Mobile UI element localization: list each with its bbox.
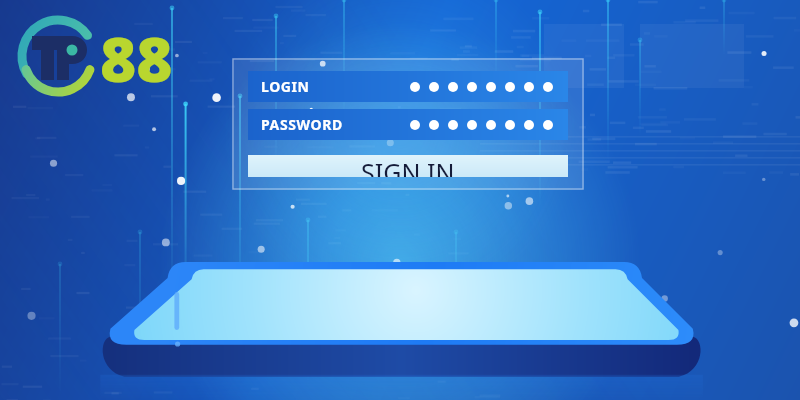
button[interactable]: PASSWORD	[248, 109, 568, 140]
staticText: 88	[100, 16, 173, 100]
staticText: PASSWORD	[261, 115, 343, 134]
button[interactable]: LOGIN	[248, 71, 568, 102]
button[interactable]: SIGN IN	[248, 155, 568, 177]
staticText: SIGN IN	[361, 155, 455, 177]
staticText: LOGIN	[261, 77, 310, 96]
